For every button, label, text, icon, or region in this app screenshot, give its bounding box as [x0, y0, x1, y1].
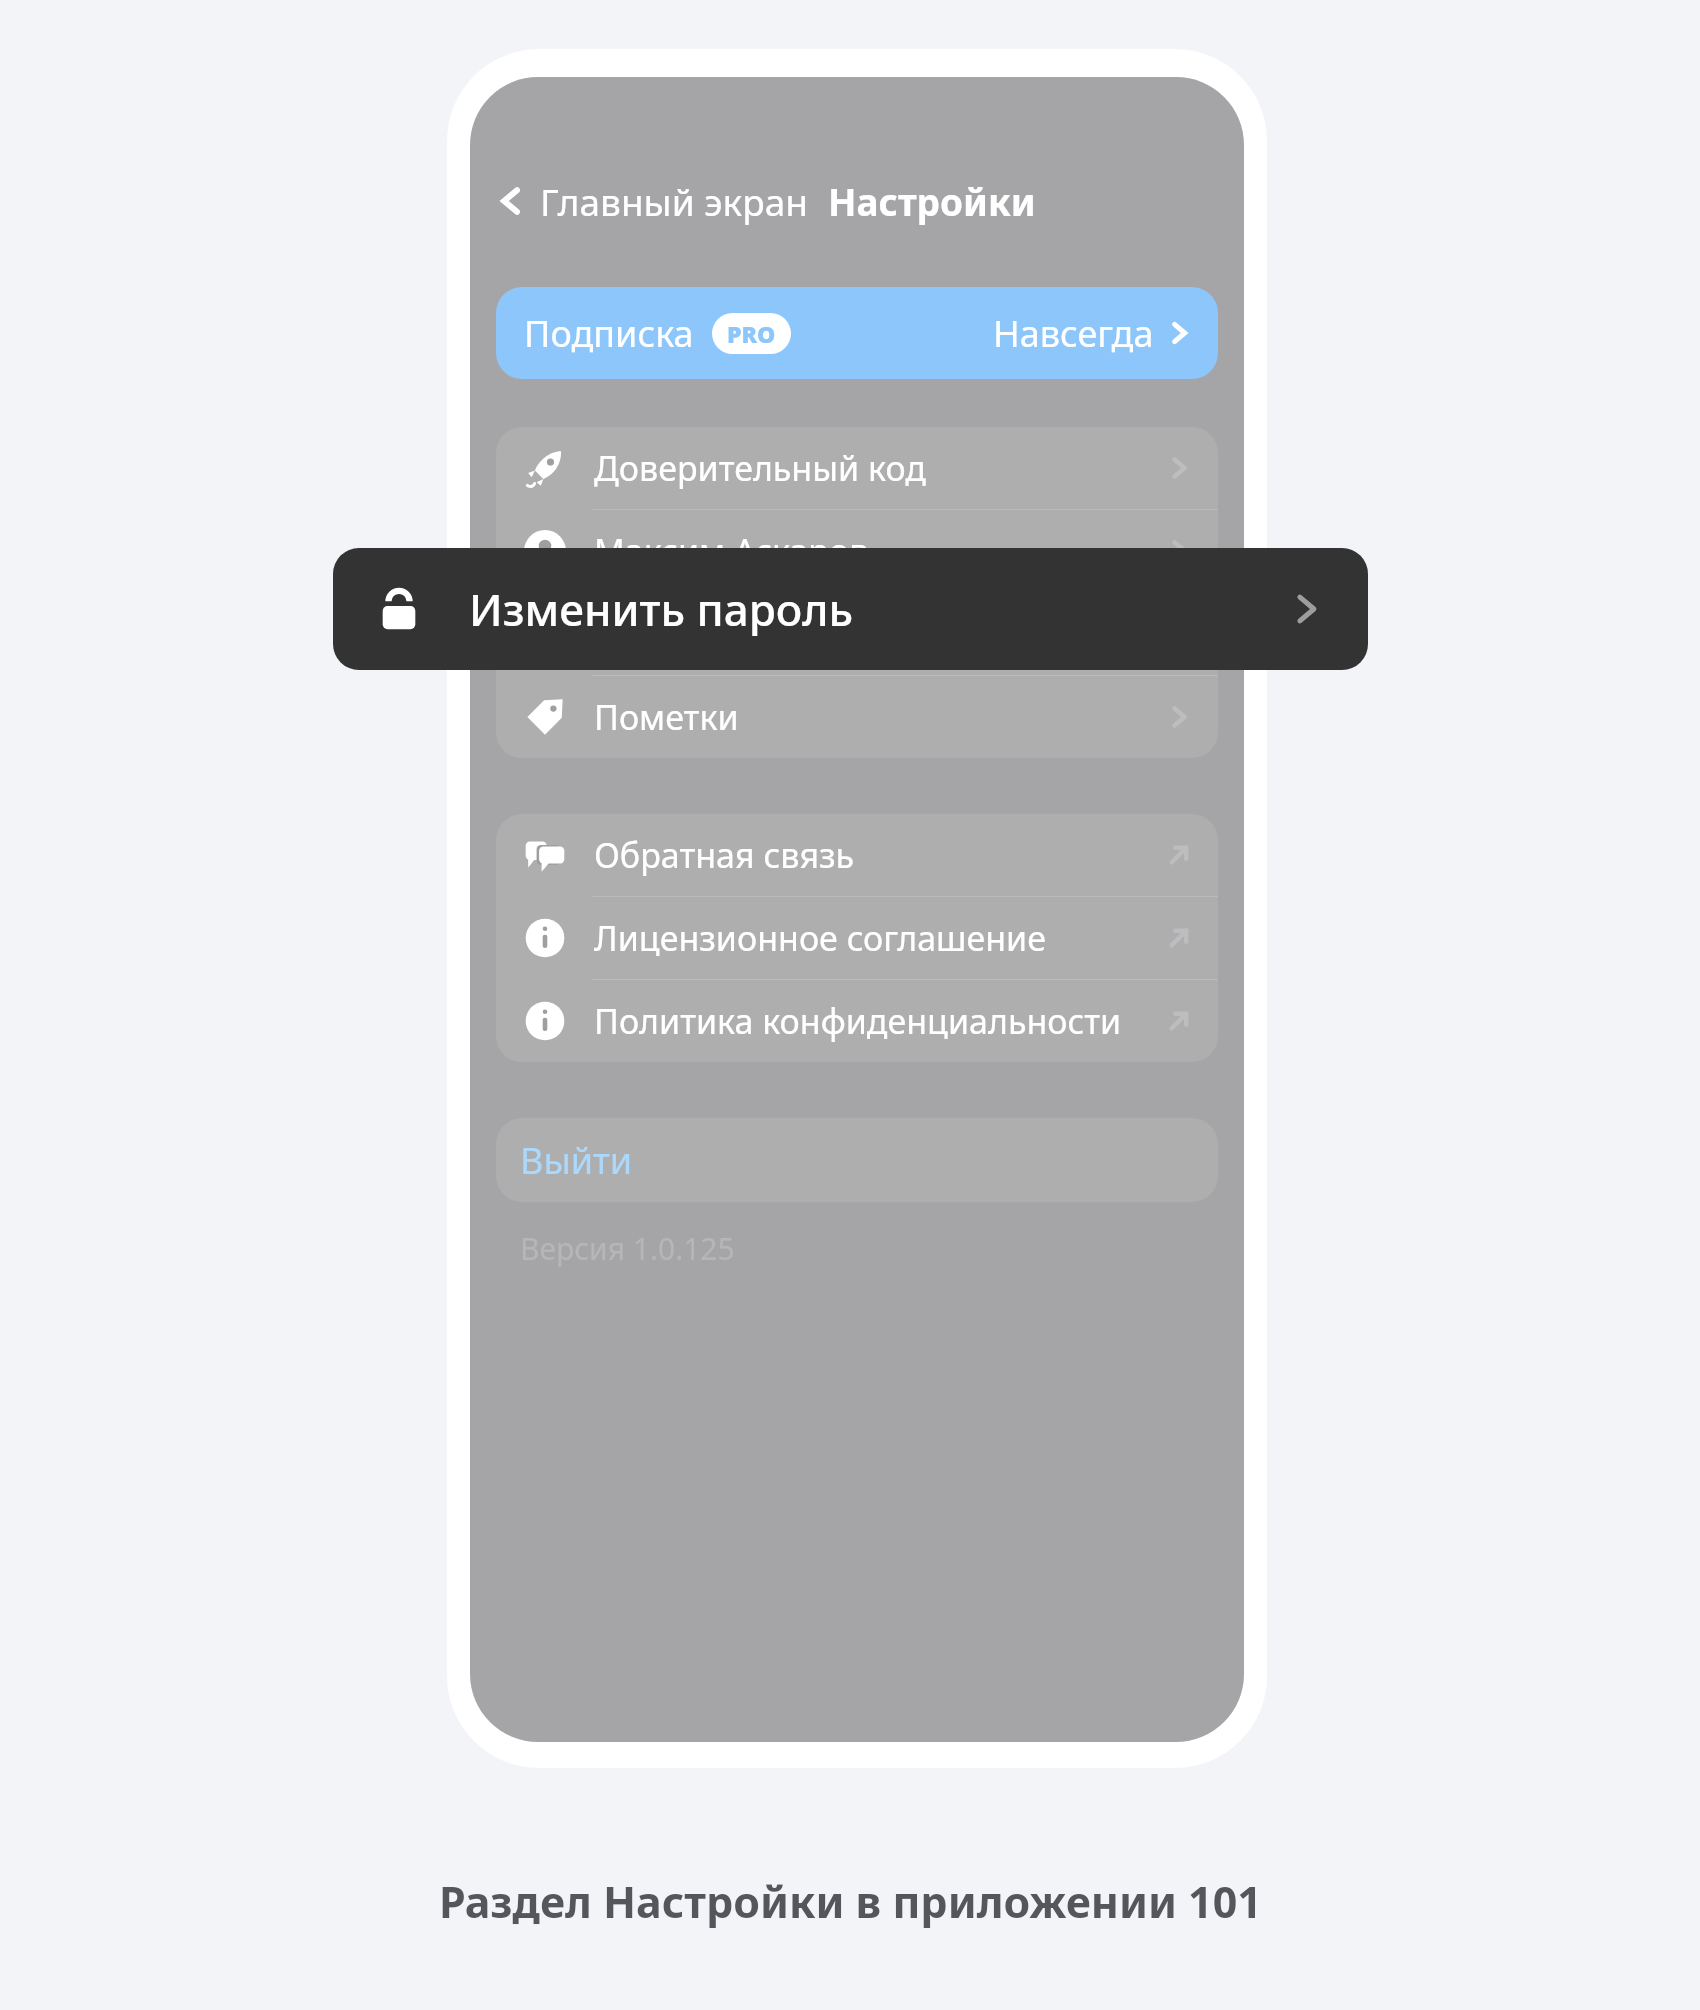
staticText: Навсегда [993, 309, 1154, 358]
staticText: Максим Аскаров [594, 528, 869, 574]
staticText: Лицензионное соглашение [594, 915, 1046, 961]
button[interactable]: Назад [496, 173, 1244, 229]
staticText: Обратная связь [594, 832, 855, 878]
button[interactable]: Пометки [496, 676, 1218, 758]
staticText: Выйти [520, 1136, 633, 1185]
staticText: Политика конфиденциальности [594, 998, 1122, 1044]
staticText: PRO [727, 318, 776, 349]
other: Назад [496, 186, 526, 216]
staticText: Версия 1.0.125 [520, 1228, 735, 1269]
button[interactable]: Обратная связь [496, 814, 1218, 896]
staticText: Изменить пароль [469, 579, 854, 639]
button[interactable]: Выйти [496, 1118, 1218, 1202]
button[interactable]: Подписка [496, 287, 1218, 379]
staticText: Настройки [828, 176, 1036, 226]
button[interactable]: Лицензионное соглашение [496, 897, 1218, 979]
button[interactable]: Максим Аскаров [496, 510, 1218, 592]
staticText: Изменить пароль [594, 611, 886, 657]
staticText: Доверительный код [594, 445, 926, 491]
staticText: Пометки [594, 694, 739, 740]
button[interactable]: Изменить пароль [496, 593, 1218, 675]
staticText: Главный экран [540, 176, 808, 226]
staticText: Подписка [524, 309, 694, 358]
staticText: Раздел Настройки в приложении 101 [439, 1872, 1262, 1931]
button[interactable]: Изменить пароль [333, 548, 1368, 670]
button[interactable]: Доверительный код [496, 427, 1218, 509]
button[interactable]: Политика конфиденциальности [496, 980, 1218, 1062]
